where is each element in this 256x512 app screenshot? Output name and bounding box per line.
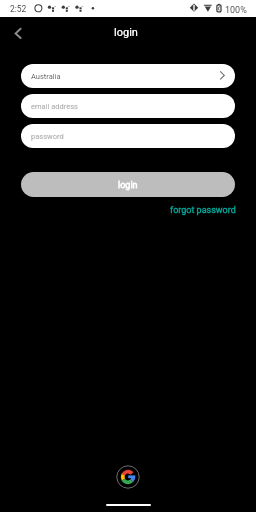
button[interactable]: Sign in with Google [115, 464, 141, 490]
staticText: login [118, 180, 138, 191]
staticText: 2:52 [10, 4, 27, 14]
staticText: forgot password [170, 205, 236, 216]
staticText: Australia [31, 72, 61, 81]
button[interactable]: password [21, 124, 235, 148]
button[interactable]: Back [3, 20, 31, 48]
button[interactable]: forgot password [170, 205, 236, 216]
staticText: login [114, 26, 138, 39]
staticText: email address [31, 102, 78, 111]
button[interactable]: email address [21, 94, 235, 118]
button[interactable]: Australia [21, 64, 235, 88]
button[interactable]: login [21, 172, 235, 197]
staticText: 100% [225, 5, 247, 16]
staticText: password [31, 132, 64, 141]
